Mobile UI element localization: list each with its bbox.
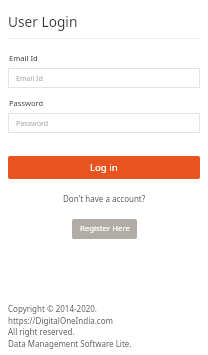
staticText: Password: [9, 98, 44, 108]
button[interactable]: Email Id: [8, 68, 200, 88]
staticText: Copyright © 2014-2020.: [8, 303, 97, 314]
staticText: All right reserved.: [8, 326, 75, 337]
staticText: Register Here: [80, 223, 130, 234]
staticText: https://DigitalOneIndia.com: [8, 315, 114, 326]
staticText: Password: [16, 118, 49, 128]
staticText: Email Id: [16, 73, 43, 83]
button[interactable]: Log in: [8, 156, 200, 179]
staticText: Log in: [90, 161, 118, 174]
staticText: Don't have a account?: [63, 193, 146, 204]
button[interactable]: Password: [8, 113, 200, 133]
staticText: Data Management Software Lite.: [8, 338, 132, 349]
staticText: Email Id: [9, 53, 38, 63]
staticText: User Login: [8, 12, 78, 31]
button[interactable]: Register Here: [72, 219, 137, 239]
